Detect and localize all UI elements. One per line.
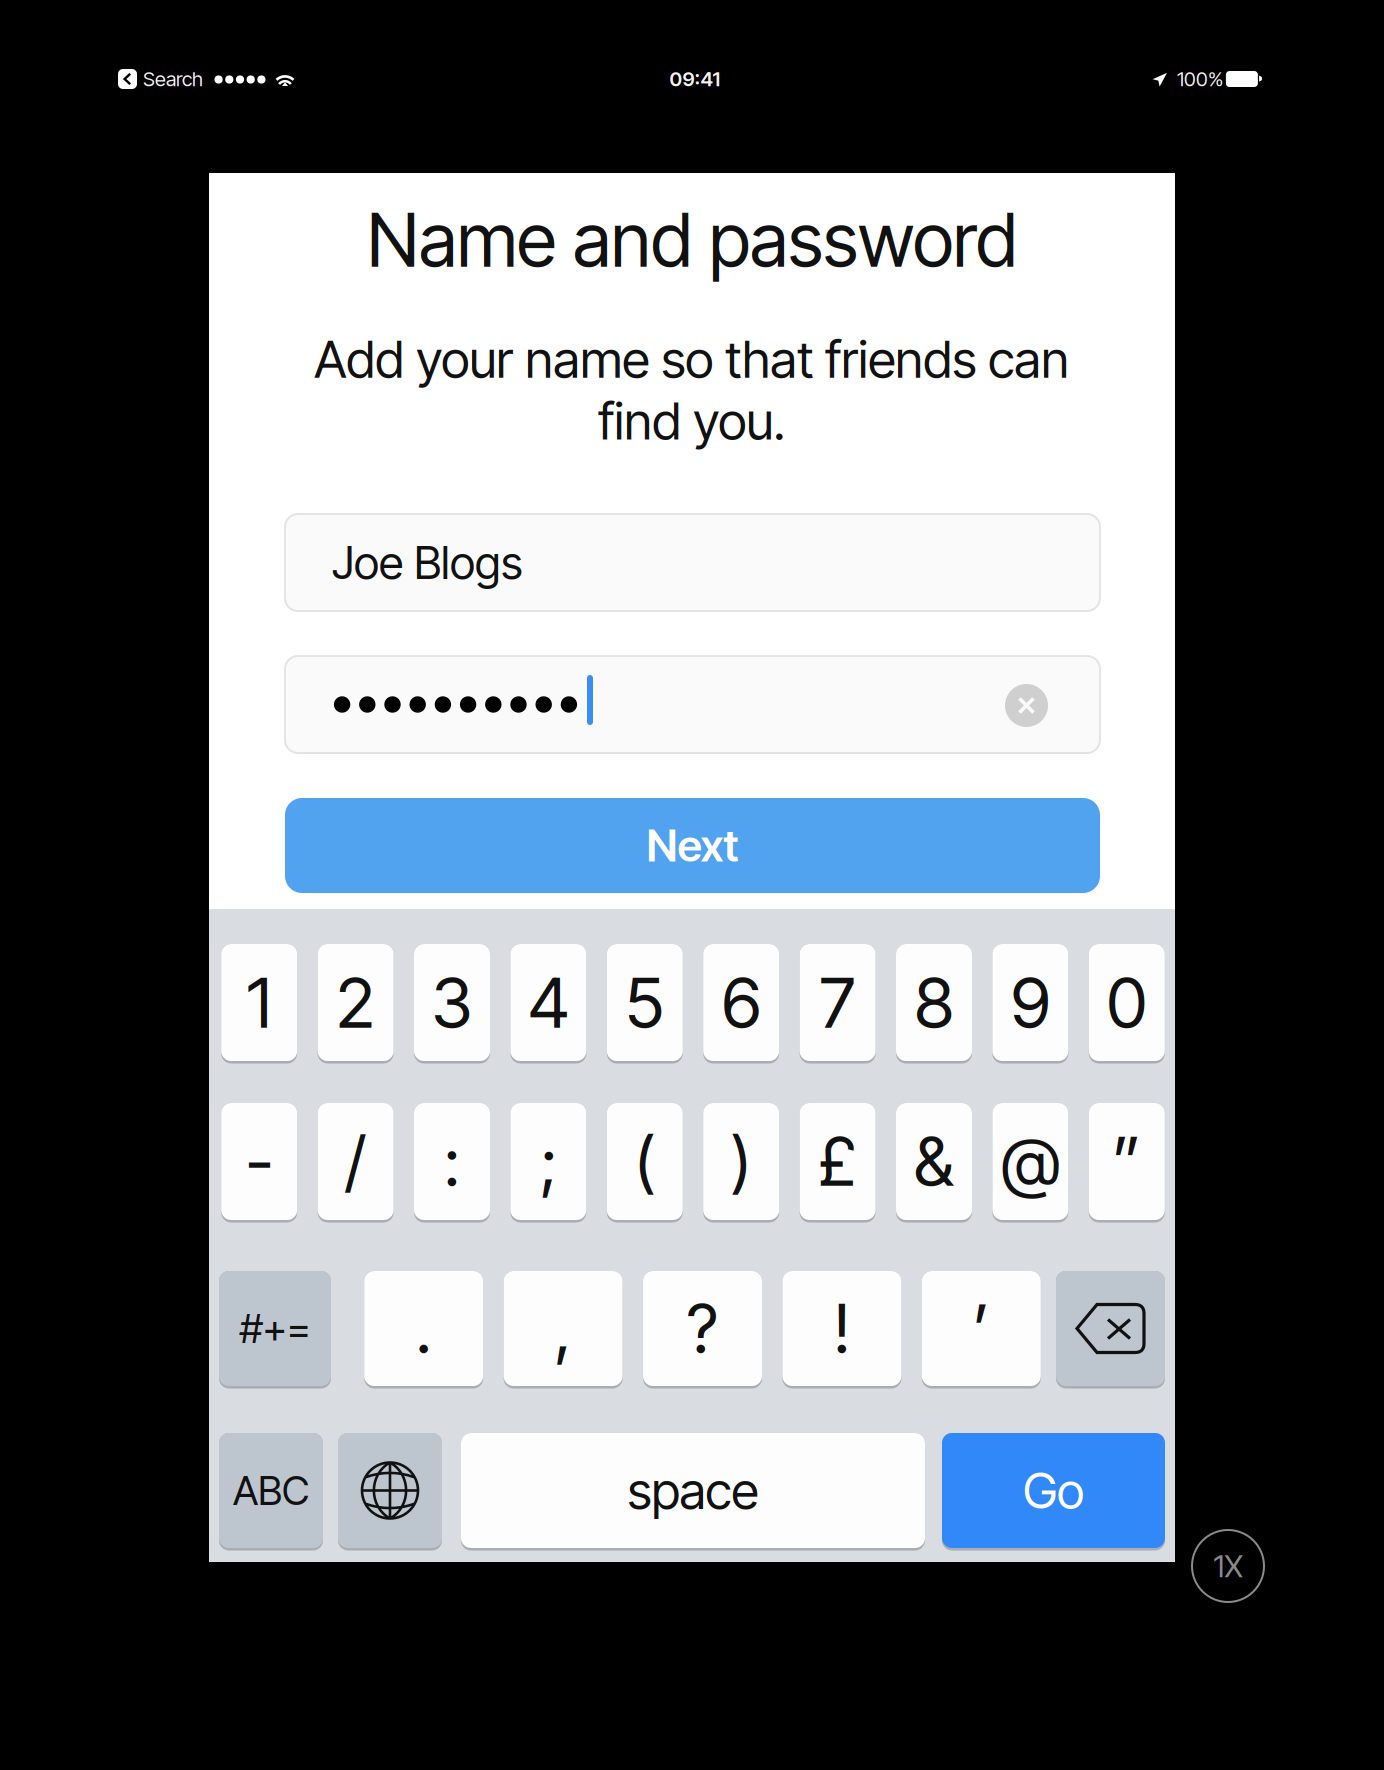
button[interactable]: ” bbox=[1089, 1103, 1165, 1223]
button[interactable]: @ bbox=[992, 1103, 1068, 1223]
staticText: & bbox=[914, 1121, 954, 1202]
staticText: ; bbox=[540, 1121, 557, 1202]
staticText: ) bbox=[731, 1121, 752, 1202]
staticText: / bbox=[345, 1121, 366, 1202]
button[interactable]: Next bbox=[285, 798, 1100, 893]
button[interactable]: Clear password bbox=[1005, 684, 1048, 727]
button[interactable]: 2 bbox=[318, 944, 394, 1064]
button[interactable]: £ bbox=[800, 1103, 876, 1223]
staticText: Next bbox=[646, 819, 738, 872]
button[interactable]: Delete bbox=[1056, 1271, 1165, 1389]
staticText: - bbox=[246, 1121, 273, 1202]
staticText: ” bbox=[1112, 1121, 1141, 1202]
staticText: #+= bbox=[239, 1304, 310, 1353]
staticText: £ bbox=[818, 1121, 857, 1202]
staticText: 7 bbox=[820, 961, 856, 1044]
staticText: . bbox=[416, 1288, 432, 1369]
staticText: 3 bbox=[431, 961, 472, 1044]
button[interactable]: ABC bbox=[219, 1433, 323, 1551]
staticText: Go bbox=[1023, 1461, 1084, 1520]
staticText: Search bbox=[143, 67, 203, 91]
staticText: @ bbox=[1001, 1121, 1060, 1202]
button[interactable]: ( bbox=[607, 1103, 683, 1223]
staticText: Joe Blogs bbox=[332, 535, 523, 590]
button[interactable]: #+= bbox=[219, 1271, 331, 1389]
staticText: 09:41 bbox=[669, 67, 720, 91]
button[interactable]: / bbox=[318, 1103, 394, 1223]
button[interactable]: 4 bbox=[510, 944, 586, 1064]
button[interactable]: 6 bbox=[703, 944, 779, 1064]
staticText: 5 bbox=[625, 961, 664, 1044]
button[interactable]: 5 bbox=[607, 944, 683, 1064]
button[interactable]: ) bbox=[703, 1103, 779, 1223]
staticText: 9 bbox=[1011, 961, 1050, 1044]
button[interactable]: ; bbox=[510, 1103, 586, 1223]
staticText: Add your name so that friends can find y… bbox=[314, 328, 1069, 452]
staticText: : bbox=[444, 1121, 460, 1202]
button[interactable]: - bbox=[221, 1103, 297, 1223]
staticText: ABC bbox=[233, 1466, 309, 1515]
button[interactable]: 1 bbox=[221, 944, 297, 1064]
button[interactable]: 0 bbox=[1089, 944, 1165, 1064]
button[interactable]: Go bbox=[942, 1433, 1165, 1551]
staticText: Name and password bbox=[367, 196, 1017, 284]
button[interactable]: , bbox=[504, 1271, 623, 1389]
staticText: ! bbox=[833, 1288, 850, 1369]
staticText: ? bbox=[687, 1288, 718, 1369]
button[interactable]: 7 bbox=[800, 944, 876, 1064]
button[interactable]: 9 bbox=[992, 944, 1068, 1064]
staticText: 8 bbox=[914, 961, 953, 1044]
staticText: 1 bbox=[247, 961, 272, 1044]
staticText: 4 bbox=[528, 961, 569, 1044]
staticText: , bbox=[555, 1288, 572, 1369]
button[interactable]: 8 bbox=[896, 944, 972, 1064]
button[interactable]: . bbox=[364, 1271, 483, 1389]
button[interactable]: ? bbox=[643, 1271, 762, 1389]
staticText: 1X bbox=[1213, 1547, 1242, 1584]
button[interactable]: ! bbox=[782, 1271, 901, 1389]
staticText: ’ bbox=[973, 1288, 990, 1369]
staticText: 0 bbox=[1107, 961, 1147, 1044]
button[interactable]: 3 bbox=[414, 944, 490, 1064]
button[interactable]: : bbox=[414, 1103, 490, 1223]
button[interactable]: space bbox=[461, 1433, 925, 1551]
staticText: 2 bbox=[336, 961, 375, 1044]
staticText: 100% bbox=[1177, 67, 1223, 91]
staticText: ( bbox=[634, 1121, 655, 1202]
button[interactable]: Next keyboard bbox=[338, 1433, 442, 1551]
staticText: space bbox=[627, 1460, 758, 1521]
staticText: 6 bbox=[722, 961, 761, 1044]
button[interactable]: Back to Search bbox=[118, 69, 137, 89]
button[interactable]: ’ bbox=[922, 1271, 1041, 1389]
button[interactable]: & bbox=[896, 1103, 972, 1223]
